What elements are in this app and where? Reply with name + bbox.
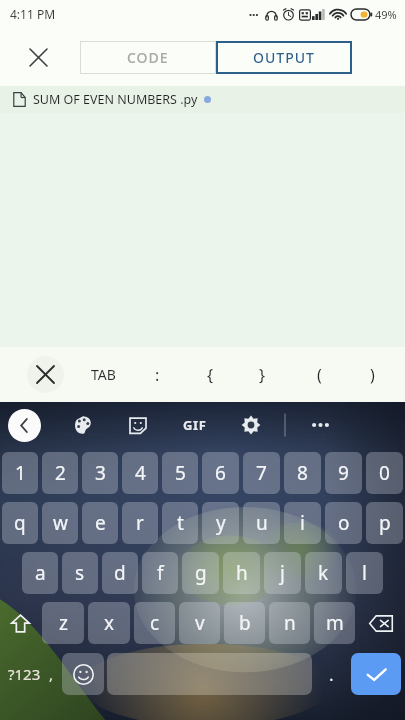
staticText: CODE	[127, 48, 169, 67]
button[interactable]: y	[202, 502, 239, 544]
button[interactable]: p	[366, 502, 403, 544]
staticText: 5	[175, 460, 186, 486]
staticText: l	[362, 560, 367, 586]
button[interactable]: Close	[20, 39, 56, 75]
button[interactable]: v	[179, 602, 220, 644]
staticText: s	[75, 560, 85, 586]
button[interactable]: )	[350, 347, 394, 402]
staticText: p	[379, 510, 391, 536]
staticText: 9	[338, 460, 349, 486]
staticText: 7	[256, 460, 267, 486]
staticText: w	[53, 510, 68, 536]
button[interactable]: Themes	[61, 402, 105, 448]
staticText: u	[256, 510, 268, 536]
staticText: t	[177, 510, 184, 536]
button[interactable]: SUM OF EVEN NUMBERS .py	[0, 86, 405, 113]
button[interactable]: z	[42, 602, 84, 644]
button[interactable]: 5	[162, 452, 198, 494]
button[interactable]: k	[305, 552, 342, 594]
button[interactable]: (	[297, 347, 341, 402]
staticText: k	[318, 560, 329, 586]
button[interactable]: 4	[122, 452, 158, 494]
button[interactable]: i	[284, 502, 321, 544]
button[interactable]: 3	[82, 452, 118, 494]
button[interactable]: w	[42, 502, 78, 544]
button[interactable]: 9	[325, 452, 362, 494]
staticText: v	[195, 610, 205, 636]
staticText: c	[150, 610, 160, 636]
button[interactable]: q	[2, 502, 38, 544]
button[interactable]: 1	[2, 452, 38, 494]
staticText: i	[300, 510, 305, 536]
button[interactable]: d	[102, 552, 138, 594]
staticText: }	[259, 364, 266, 386]
button[interactable]: u	[243, 502, 280, 544]
staticText: {	[207, 364, 214, 386]
staticText: 8	[297, 460, 308, 486]
staticText: GIF	[183, 416, 207, 434]
button[interactable]: 0	[366, 452, 403, 494]
button[interactable]: {	[188, 347, 232, 402]
staticText: 4	[135, 460, 146, 486]
staticText: 2	[55, 460, 66, 486]
button[interactable]: Enter	[351, 653, 401, 695]
staticText: f	[157, 560, 164, 586]
staticText: y	[216, 510, 226, 536]
staticText: j	[280, 560, 285, 586]
staticText: 6	[215, 460, 226, 486]
button[interactable]: 2	[42, 452, 78, 494]
button[interactable]: m	[314, 602, 355, 644]
staticText: TAB	[91, 365, 116, 384]
button[interactable]: .	[315, 648, 347, 700]
staticText: SUM OF EVEN NUMBERS .py	[33, 91, 198, 108]
button[interactable]: :	[135, 347, 179, 402]
staticText: a	[35, 560, 46, 586]
staticText: x	[104, 610, 115, 636]
button[interactable]: TAB	[81, 347, 125, 402]
button[interactable]: 7	[243, 452, 280, 494]
button[interactable]: f	[142, 552, 178, 594]
button[interactable]: n	[269, 602, 310, 644]
button[interactable]: 8	[284, 452, 321, 494]
button[interactable]: l	[346, 552, 383, 594]
button[interactable]: r	[122, 502, 158, 544]
button[interactable]: Emoji	[62, 653, 104, 695]
staticText: .	[329, 663, 334, 686]
button[interactable]: }	[240, 347, 284, 402]
staticText: 4:11 PM	[10, 6, 56, 22]
button[interactable]: Shift	[0, 598, 40, 648]
button[interactable]: s	[62, 552, 98, 594]
button[interactable]: CODE	[80, 41, 216, 74]
button[interactable]: b	[224, 602, 265, 644]
staticText: o	[338, 510, 350, 536]
button[interactable]: a	[22, 552, 58, 594]
button[interactable]: g	[182, 552, 219, 594]
button[interactable]: Stickers	[116, 402, 160, 448]
staticText: d	[114, 560, 126, 586]
button[interactable]: OUTPUT	[216, 41, 352, 74]
staticText: m	[326, 610, 344, 636]
button[interactable]: Backspace	[357, 598, 405, 648]
button[interactable]: h	[223, 552, 260, 594]
button[interactable]: o	[325, 502, 362, 544]
button[interactable]: Space	[107, 653, 312, 695]
staticText: g	[195, 560, 207, 586]
button[interactable]: j	[264, 552, 301, 594]
staticText: q	[14, 510, 26, 536]
button[interactable]: x	[88, 602, 130, 644]
button[interactable]: 6	[202, 452, 239, 494]
button[interactable]: Hide symbols	[27, 356, 64, 393]
button[interactable]: e	[82, 502, 118, 544]
staticText: :	[155, 364, 160, 386]
button[interactable]: Back	[8, 409, 41, 442]
staticText: 49%	[375, 7, 397, 22]
staticText: OUTPUT	[253, 48, 315, 67]
staticText: )	[370, 364, 375, 386]
button[interactable]: c	[134, 602, 175, 644]
button[interactable]: More	[300, 402, 344, 448]
button[interactable]: GIF	[173, 402, 217, 448]
button[interactable]: t	[162, 502, 198, 544]
button[interactable]: ?123	[0, 648, 62, 700]
button[interactable]: Settings	[229, 402, 273, 448]
staticText: r	[136, 510, 144, 536]
